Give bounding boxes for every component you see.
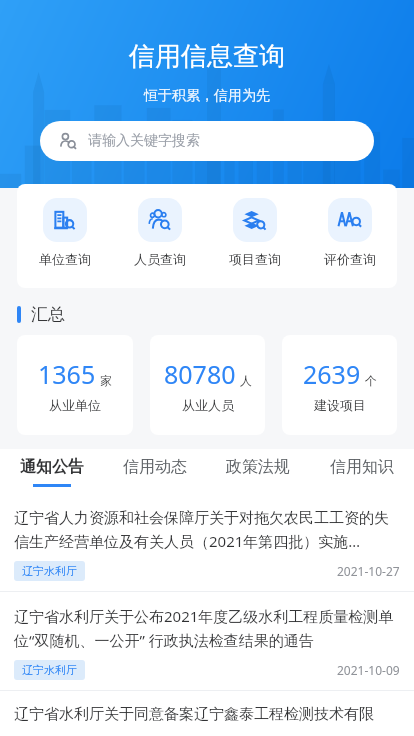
staticText: 汇总 bbox=[31, 304, 65, 325]
button[interactable]: 通知公告 bbox=[0, 449, 103, 495]
staticText: 通知公告 bbox=[20, 457, 84, 477]
button[interactable]: 1365 bbox=[17, 335, 133, 435]
staticText: 信用信息查询 bbox=[129, 40, 285, 73]
staticText: 从业单位 bbox=[49, 397, 101, 413]
staticText: 辽宁省人力资源和社会保障厅关于对拖欠农民工工资的失信生产经营单位及有关人员（20… bbox=[14, 509, 400, 552]
button[interactable]: 80780 bbox=[150, 335, 265, 435]
staticText: 评价查询 bbox=[324, 251, 376, 267]
button[interactable]: 辽宁省水利厅关于同意备案辽宁鑫泰工程检测技术有限 bbox=[0, 691, 414, 736]
staticText: 恒于积累，信用为先 bbox=[144, 87, 270, 105]
staticText: 辽宁省水利厅关于公布2021年度乙级水利工程质量检测单位“双随机、一公开” 行政… bbox=[14, 606, 400, 651]
staticText: 辽宁水利厅 bbox=[22, 564, 77, 578]
staticText: 项目查询 bbox=[229, 251, 281, 267]
staticText: 人员查询 bbox=[134, 251, 186, 267]
staticText: 从业人员 bbox=[182, 397, 234, 413]
staticText: 建设项目 bbox=[314, 397, 366, 413]
button[interactable]: 信用动态 bbox=[103, 449, 206, 495]
button[interactable]: 人员查询 bbox=[112, 198, 207, 288]
staticText: 单位查询 bbox=[39, 251, 91, 267]
staticText: 个 bbox=[365, 373, 377, 388]
staticText: 信用动态 bbox=[123, 457, 187, 477]
button[interactable]: 政策法规 bbox=[206, 449, 310, 495]
staticText: 请输入关键字搜索 bbox=[88, 132, 200, 150]
staticText: 家 bbox=[100, 373, 112, 388]
staticText: 人 bbox=[240, 373, 252, 388]
button[interactable]: 辽宁省水利厅关于公布2021年度乙级水利工程质量检测单位“双随机、一公开” 行政… bbox=[0, 592, 414, 690]
staticText: 辽宁水利厅 bbox=[22, 663, 77, 677]
button[interactable]: 评价查询 bbox=[302, 198, 397, 288]
staticText: 2639 bbox=[303, 357, 361, 391]
staticText: 1365 bbox=[38, 357, 96, 391]
button[interactable]: 请输入关键字搜索 bbox=[40, 121, 374, 161]
staticText: 政策法规 bbox=[226, 457, 290, 477]
staticText: 2021-10-27 bbox=[337, 563, 400, 579]
button[interactable]: 辽宁省人力资源和社会保障厅关于对拖欠农民工工资的失信生产经营单位及有关人员（20… bbox=[0, 495, 414, 591]
button[interactable]: 项目查询 bbox=[207, 198, 302, 288]
button[interactable]: 信用知识 bbox=[310, 449, 414, 495]
staticText: 信用知识 bbox=[330, 457, 394, 477]
button[interactable]: 单位查询 bbox=[17, 198, 112, 288]
staticText: 2021-10-09 bbox=[337, 662, 400, 678]
button[interactable]: 2639 bbox=[282, 335, 397, 435]
staticText: 80780 bbox=[164, 357, 236, 391]
staticText: 辽宁省水利厅关于同意备案辽宁鑫泰工程检测技术有限 bbox=[14, 705, 374, 724]
